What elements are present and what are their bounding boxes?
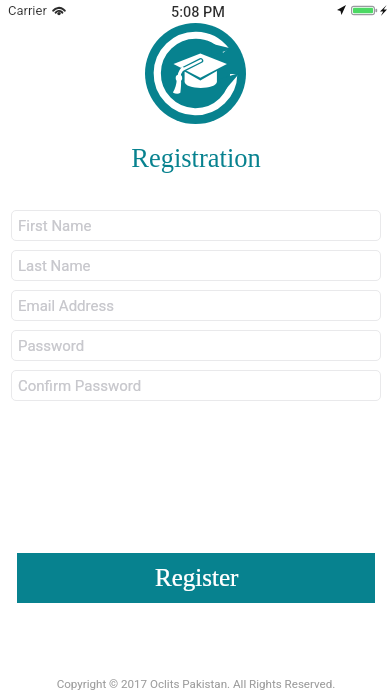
staticText: Email Address — [18, 297, 114, 315]
button[interactable]: Password — [11, 330, 381, 361]
button[interactable]: First Name — [11, 210, 381, 241]
button[interactable]: Email Address — [11, 290, 381, 321]
staticText: Password — [18, 337, 85, 355]
staticText: 5:08 PM — [2, 4, 392, 21]
staticText: Confirm Password — [18, 377, 142, 395]
staticText: Registration — [0, 143, 392, 172]
staticText: First Name — [18, 217, 92, 235]
button[interactable]: Confirm Password — [11, 370, 381, 401]
staticText: Last Name — [18, 257, 91, 275]
staticText: Register — [155, 564, 239, 592]
button[interactable]: Register — [17, 553, 375, 603]
button[interactable]: Last Name — [11, 250, 381, 281]
staticText: Carrier — [8, 3, 47, 18]
staticText: Copyright © 2017 Oclits Pakistan. All Ri… — [0, 677, 392, 691]
other: App logo — [145, 23, 246, 124]
